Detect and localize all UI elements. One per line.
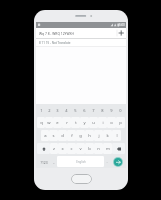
staticText: ?123 — [40, 160, 48, 164]
button[interactable]: d — [58, 130, 67, 141]
button[interactable]: English — [57, 156, 104, 167]
staticText: y — [83, 120, 86, 126]
staticText: j — [98, 133, 100, 139]
button[interactable]: u — [89, 117, 98, 128]
staticText: f — [71, 133, 73, 139]
button[interactable] — [110, 155, 125, 168]
button[interactable]: 1 — [37, 104, 45, 116]
staticText: r — [66, 120, 68, 126]
staticText: Wq 7 8 - WRQ 12YWXH — [39, 31, 74, 35]
staticText: h — [88, 133, 91, 139]
button[interactable]: p — [116, 117, 125, 128]
staticText: b — [88, 146, 91, 152]
staticText: t — [75, 120, 77, 126]
button[interactable]: m — [103, 143, 112, 154]
button[interactable]: ?123 — [37, 155, 51, 168]
staticText: o — [110, 120, 113, 126]
button[interactable] — [112, 143, 125, 154]
button[interactable]: f — [67, 130, 76, 141]
button[interactable]: l — [112, 130, 121, 141]
staticText: 9 — [110, 108, 113, 113]
button[interactable]: x — [58, 143, 67, 154]
button[interactable]: o — [107, 117, 116, 128]
staticText: a — [44, 133, 47, 139]
button[interactable]: c — [67, 143, 76, 154]
staticText: z — [53, 146, 55, 152]
button[interactable]: y — [80, 117, 89, 128]
staticText: 6 — [83, 108, 86, 113]
staticText: w — [47, 120, 51, 126]
button[interactable]: 0 — [116, 104, 125, 116]
staticText: v — [79, 146, 82, 152]
staticText: 5:00 — [119, 23, 125, 27]
staticText: 0 — [119, 108, 122, 113]
staticText: s — [52, 133, 55, 139]
staticText: 8 11 15 - Not Translate — [39, 41, 71, 45]
staticText: l — [116, 133, 118, 139]
staticText: m — [106, 146, 110, 152]
staticText: d — [61, 133, 64, 139]
button[interactable]: 9 — [107, 104, 116, 116]
button[interactable]: 6 — [80, 104, 89, 116]
button[interactable]: z — [50, 143, 58, 154]
button[interactable]: g — [76, 130, 85, 141]
button[interactable]: 8 — [98, 104, 107, 116]
button[interactable]: , — [51, 155, 57, 168]
button[interactable]: w — [45, 117, 53, 128]
button[interactable]: i — [98, 117, 107, 128]
staticText: c — [70, 146, 73, 152]
button[interactable]: 7 — [89, 104, 98, 116]
staticText: n — [97, 146, 100, 152]
staticText: e — [56, 120, 59, 126]
button[interactable]: q — [37, 117, 45, 128]
button[interactable]: t — [71, 117, 80, 128]
staticText: . — [106, 159, 108, 164]
staticText: i — [102, 120, 104, 126]
staticText: q — [40, 120, 43, 126]
staticText: k — [106, 133, 109, 139]
button[interactable]: v — [76, 143, 85, 154]
staticText: 1 — [40, 108, 43, 113]
staticText: English — [76, 160, 86, 164]
button[interactable]: s — [49, 130, 58, 141]
button[interactable]: h — [85, 130, 94, 141]
staticText: 8 — [101, 108, 104, 113]
staticText: x — [61, 146, 64, 152]
button[interactable]: 3 — [53, 104, 62, 116]
staticText: p — [119, 120, 122, 126]
button[interactable]: 2 — [45, 104, 53, 116]
button[interactable]: 4 — [62, 104, 71, 116]
staticText: u — [92, 120, 95, 126]
staticText: g — [79, 133, 82, 139]
button[interactable]: a — [41, 130, 49, 141]
button[interactable]: n — [94, 143, 103, 154]
button[interactable]: k — [103, 130, 112, 141]
staticText: 3 — [56, 108, 59, 113]
button[interactable]: j — [94, 130, 103, 141]
staticText: 4 — [65, 108, 68, 113]
staticText: , — [53, 159, 55, 164]
staticText: 7 — [92, 108, 95, 113]
button[interactable]: r — [62, 117, 71, 128]
staticText: 2 — [48, 108, 51, 113]
button[interactable]: 5 — [71, 104, 80, 116]
button[interactable] — [71, 174, 92, 184]
button[interactable] — [117, 29, 126, 38]
staticText: 5 — [74, 108, 77, 113]
button[interactable]: e — [53, 117, 62, 128]
button[interactable]: b — [85, 143, 94, 154]
button[interactable] — [37, 143, 50, 154]
